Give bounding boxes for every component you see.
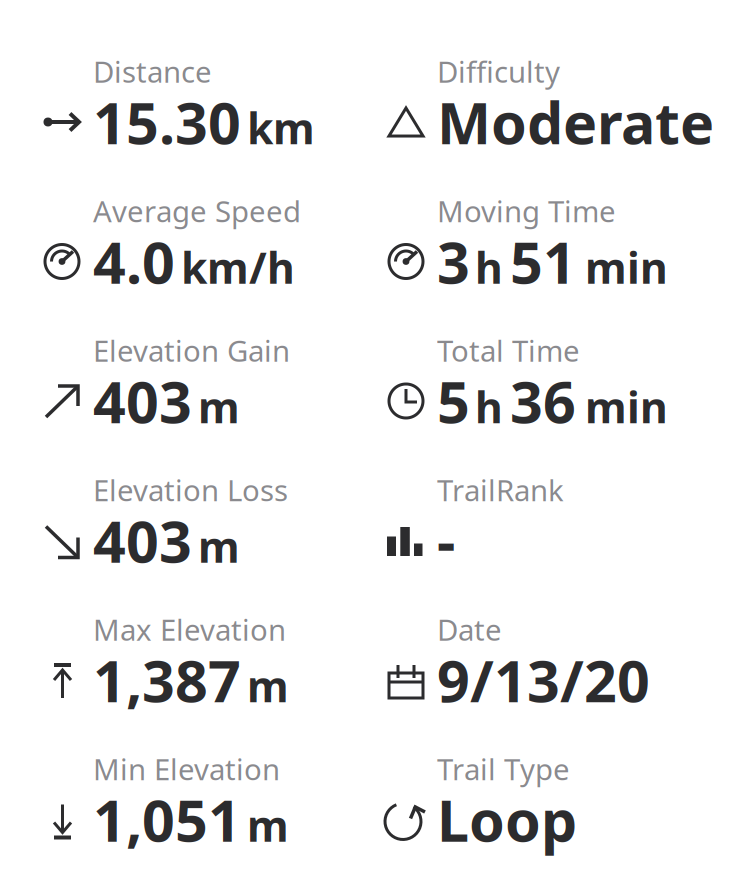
staticText: 9/13/20 [437, 642, 650, 718]
staticText: Difficulty [437, 52, 560, 91]
staticText: 36 [510, 363, 576, 439]
staticText: h [475, 239, 503, 296]
staticText: 403 [93, 363, 192, 439]
staticText: 3 [437, 223, 470, 300]
staticText: - [437, 502, 455, 579]
staticText: Loop [437, 781, 577, 858]
staticText: Total Time [437, 331, 580, 370]
staticText: Moving Time [437, 191, 616, 230]
staticText: min [585, 378, 668, 435]
staticText: m [198, 378, 240, 435]
staticText: m [198, 518, 240, 575]
staticText: min [585, 239, 668, 296]
staticText: Max Elevation [93, 610, 286, 649]
staticText: Elevation Gain [93, 331, 290, 370]
staticText: 1,051 [93, 781, 241, 858]
staticText: km [247, 99, 315, 156]
staticText: Min Elevation [93, 749, 280, 788]
staticText: 4.0 [93, 223, 175, 300]
staticText: 1,387 [93, 642, 241, 718]
staticText: km/h [181, 239, 295, 296]
staticText: 403 [93, 502, 192, 579]
staticText: m [247, 797, 289, 854]
staticText: m [247, 657, 289, 714]
staticText: 51 [510, 223, 576, 300]
staticText: Moderate [437, 84, 714, 160]
staticText: 15.30 [93, 84, 241, 160]
staticText: Trail Type [437, 749, 570, 788]
staticText: h [475, 378, 503, 435]
staticText: TrailRank [437, 470, 564, 509]
staticText: Date [437, 610, 502, 649]
staticText: 5 [437, 363, 470, 439]
staticText: Elevation Loss [93, 470, 288, 509]
staticText: Average Speed [93, 191, 301, 230]
staticText: Distance [93, 52, 212, 91]
